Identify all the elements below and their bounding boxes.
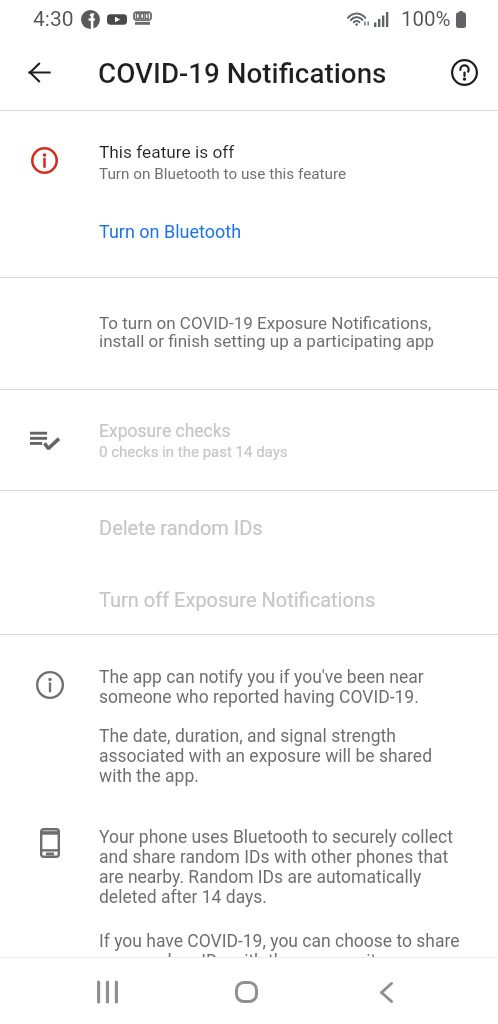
staticText: The app can notify you if you've been ne…	[99, 667, 451, 707]
staticText: 100%	[401, 7, 451, 31]
staticText: Turn off Exposure Notifications	[99, 589, 376, 612]
staticText: To turn on COVID-19 Exposure Notificatio…	[99, 315, 444, 351]
staticText: Your phone uses Bluetooth to securely co…	[99, 827, 459, 907]
staticText: If you have COVID-19, you can choose to …	[99, 931, 471, 971]
staticText: 0 checks in the past 14 days	[99, 443, 288, 460]
staticText: 4:30	[33, 7, 74, 31]
button[interactable]: Navigate up	[15, 48, 63, 96]
button[interactable]: Delete random IDs	[0, 491, 498, 562]
button[interactable]: Exposure checks	[0, 390, 498, 490]
staticText: The date, duration, and signal strength …	[99, 726, 451, 786]
button[interactable]: Help	[440, 48, 488, 96]
staticText: COVID-19 Notifications	[98, 58, 387, 90]
button[interactable]: Recent apps	[69, 960, 145, 1024]
staticText: This feature is off	[99, 142, 235, 162]
staticText: Turn on Bluetooth	[99, 222, 242, 243]
button[interactable]: Back	[348, 960, 424, 1024]
staticText: Exposure checks	[99, 421, 231, 441]
staticText: Turn on Bluetooth to use this feature	[99, 165, 347, 183]
button[interactable]: Turn off Exposure Notifications	[0, 562, 498, 634]
staticText: Delete random IDs	[99, 517, 263, 540]
button[interactable]: Turn on Bluetooth	[88, 213, 253, 252]
button[interactable]: Home	[208, 960, 284, 1024]
